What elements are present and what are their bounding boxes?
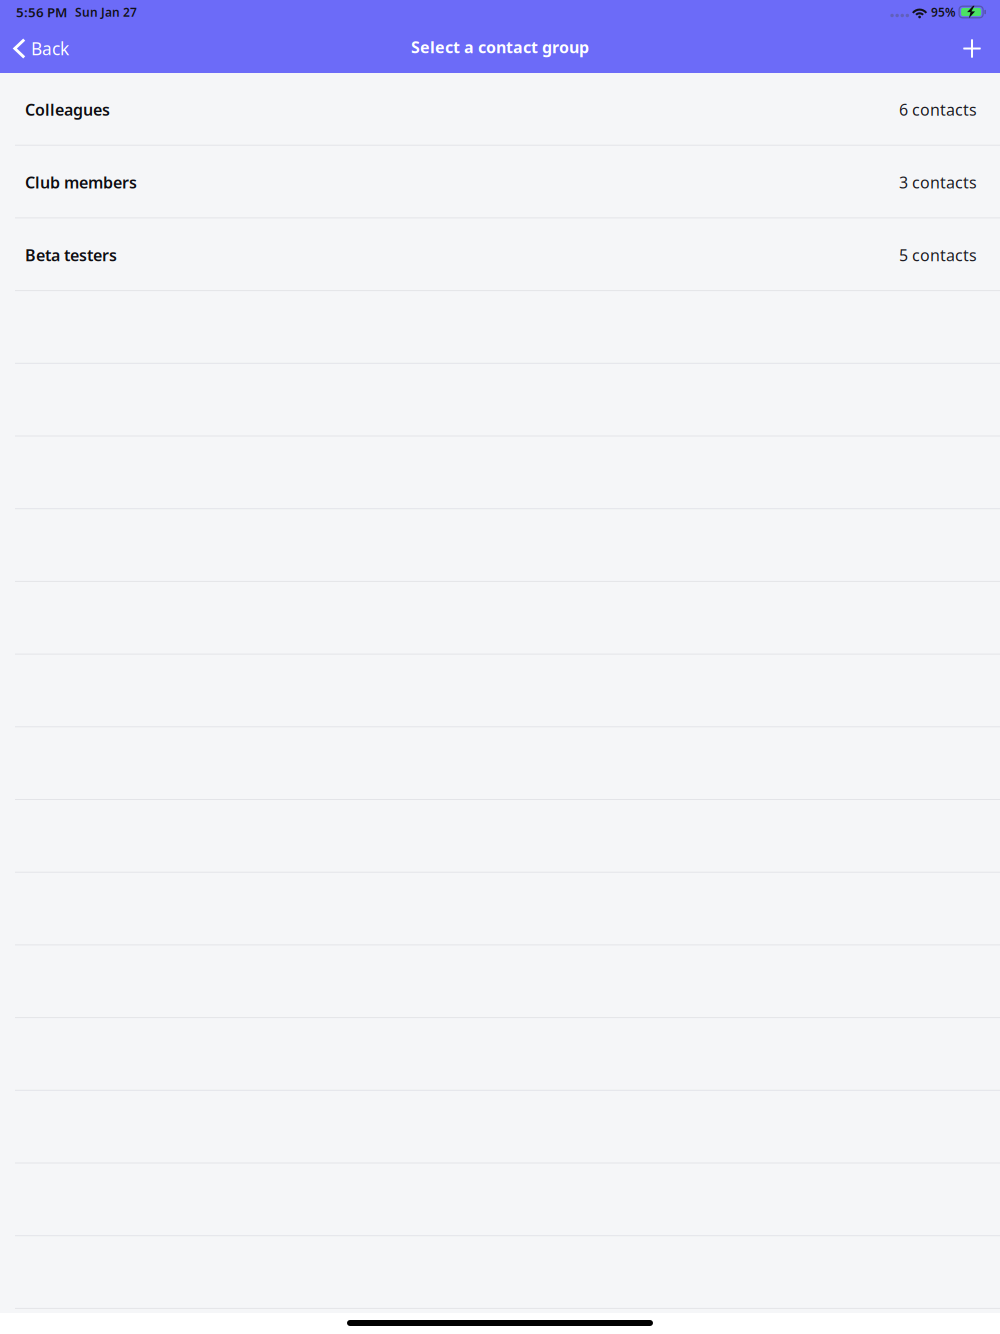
button[interactable]: Beta testers (0, 218, 1000, 290)
staticText: 5 contacts (899, 244, 977, 266)
button[interactable]: Add group (950, 26, 994, 70)
staticText: Beta testers (25, 244, 117, 266)
staticText: Club members (25, 172, 137, 193)
staticText: Back (31, 37, 69, 60)
staticText: 6 contacts (899, 99, 977, 120)
button[interactable]: Back (0, 26, 81, 70)
staticText: 3 contacts (899, 172, 977, 193)
staticText: 95% (931, 4, 956, 20)
staticText: Select a contact group (411, 36, 589, 58)
staticText: Sun Jan 27 (75, 4, 137, 20)
button[interactable]: Colleagues (0, 73, 1000, 145)
staticText: 5:56 PM (16, 3, 67, 21)
staticText: Colleagues (25, 99, 110, 120)
button[interactable]: Club members (0, 146, 1000, 217)
